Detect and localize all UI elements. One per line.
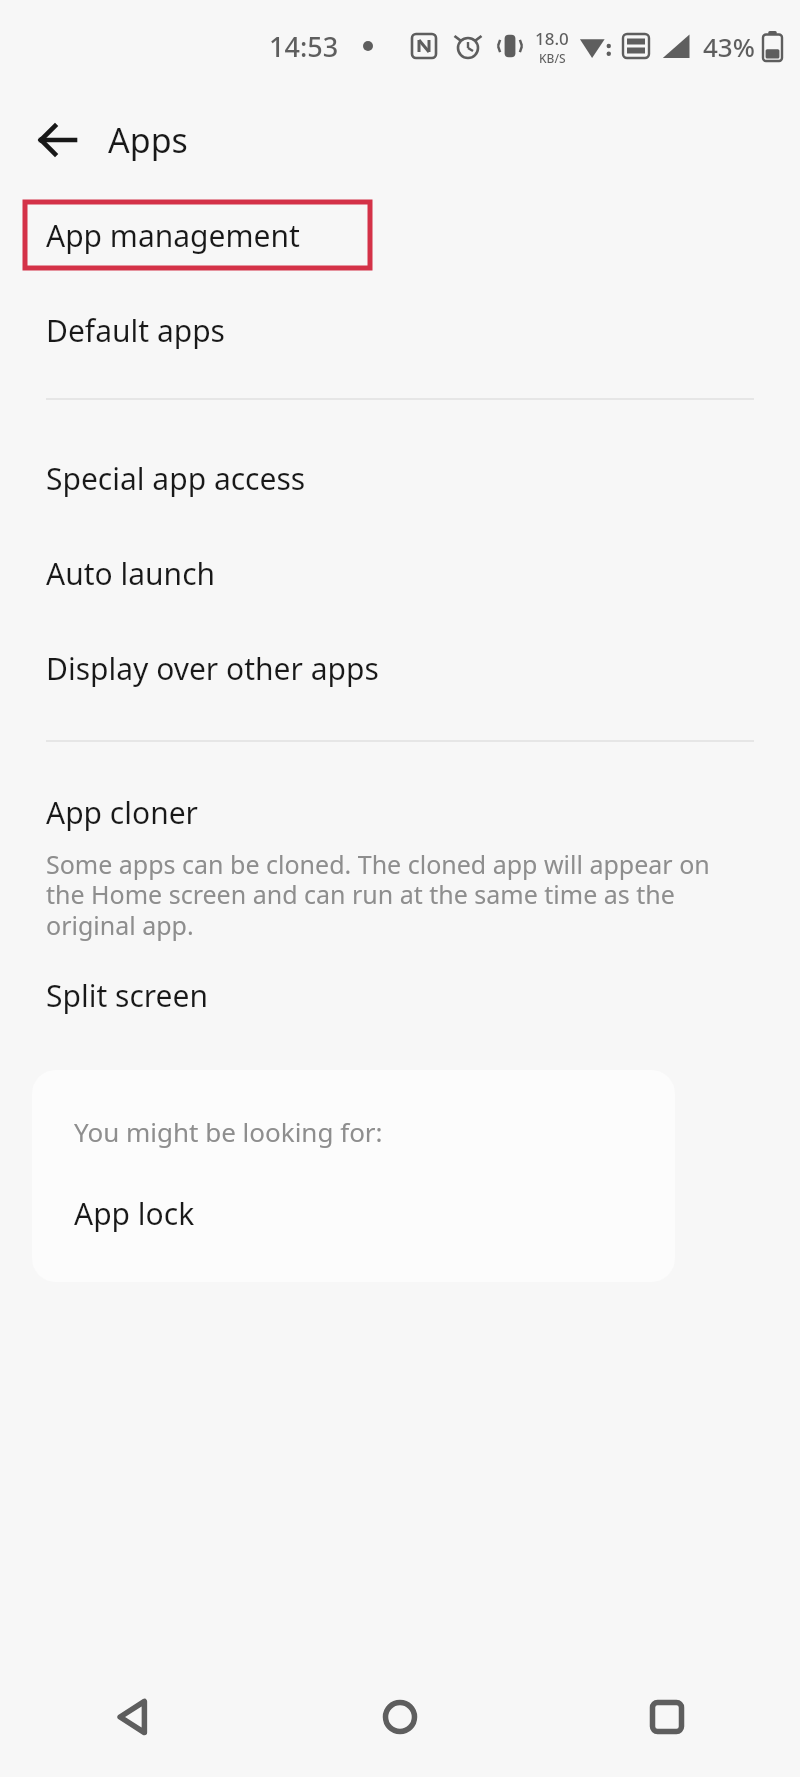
staticText: Some apps can be cloned. The cloned app … bbox=[46, 847, 740, 943]
button[interactable]: Recent apps bbox=[533, 1657, 800, 1777]
button[interactable]: Default apps bbox=[0, 288, 800, 372]
staticText: 18.0 bbox=[535, 27, 569, 50]
button[interactable]: Home bbox=[266, 1657, 533, 1777]
staticText: Display over other apps bbox=[46, 648, 379, 689]
staticText: App cloner bbox=[46, 792, 199, 833]
staticText: 14:53 bbox=[269, 28, 339, 65]
button[interactable]: Display over other apps bbox=[0, 626, 800, 710]
button[interactable]: Back bbox=[0, 1657, 266, 1777]
staticText: App lock bbox=[74, 1193, 195, 1234]
button[interactable]: Back bbox=[28, 110, 88, 170]
staticText: Apps bbox=[108, 117, 188, 163]
staticText: 43% bbox=[703, 29, 755, 64]
staticText: You might be looking for: bbox=[74, 1114, 383, 1149]
staticText: Special app access bbox=[46, 458, 306, 499]
button[interactable]: Special app access bbox=[0, 436, 800, 520]
button[interactable]: App cloner bbox=[0, 786, 800, 949]
button[interactable]: Split screen bbox=[0, 953, 800, 1037]
staticText: App management bbox=[46, 215, 300, 256]
staticText: Default apps bbox=[46, 310, 225, 351]
staticText: KB/S bbox=[539, 50, 566, 66]
staticText: Auto launch bbox=[46, 553, 216, 594]
button[interactable]: Auto launch bbox=[0, 531, 800, 615]
button[interactable]: App management bbox=[0, 193, 800, 277]
staticText: Split screen bbox=[46, 975, 208, 1016]
button[interactable]: App lock bbox=[32, 1178, 675, 1248]
